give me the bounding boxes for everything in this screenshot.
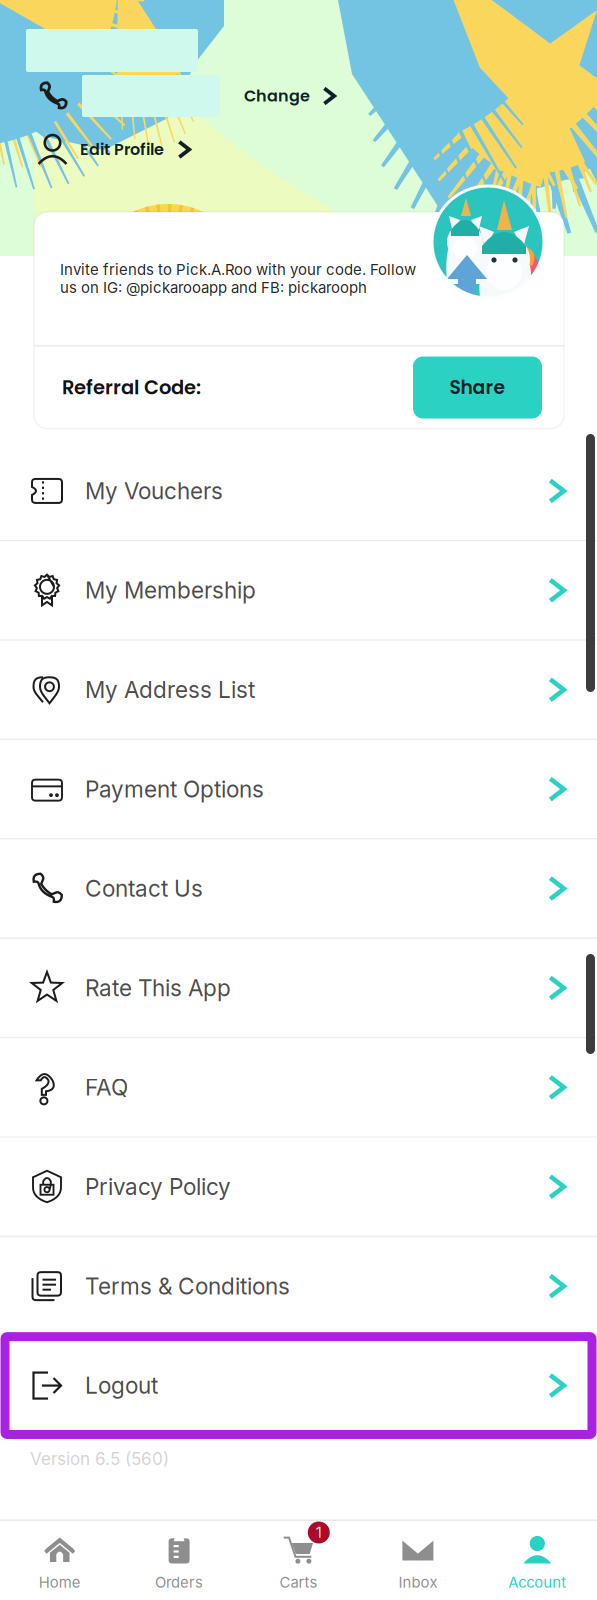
button[interactable]: Inbox bbox=[358, 1520, 478, 1600]
button[interactable]: Edit Profile bbox=[0, 128, 193, 171]
staticText: My Vouchers bbox=[85, 477, 223, 505]
staticText: 1 bbox=[316, 1524, 322, 1541]
button[interactable]: My Membership bbox=[0, 541, 597, 639]
button[interactable]: Rate This App bbox=[0, 939, 597, 1037]
staticText: Orders bbox=[155, 1573, 203, 1591]
staticText: Privacy Policy bbox=[85, 1173, 231, 1200]
button[interactable]: My Vouchers bbox=[0, 442, 597, 540]
staticText: Change bbox=[244, 85, 310, 107]
button[interactable]: My Address List bbox=[0, 641, 597, 739]
staticText: My Membership bbox=[85, 577, 256, 604]
button[interactable]: Contact Us bbox=[0, 840, 597, 937]
staticText: FAQ bbox=[85, 1074, 128, 1101]
button[interactable]: Account bbox=[478, 1520, 597, 1600]
button[interactable]: Carts bbox=[239, 1520, 358, 1600]
staticText: Carts bbox=[279, 1573, 317, 1591]
staticText: Share bbox=[449, 374, 505, 400]
button[interactable]: Terms & Conditions bbox=[0, 1237, 597, 1335]
staticText: Inbox bbox=[398, 1573, 437, 1591]
staticText: Rate This App bbox=[85, 974, 231, 1002]
staticText: Home bbox=[39, 1573, 81, 1591]
button[interactable]: Share bbox=[413, 356, 542, 418]
staticText: Payment Options bbox=[85, 775, 264, 803]
staticText: Referral Code: bbox=[62, 374, 201, 401]
staticText: Version 6.5 (560) bbox=[30, 1448, 169, 1469]
staticText: My Address List bbox=[85, 676, 255, 703]
staticText: Contact Us bbox=[85, 875, 203, 902]
button[interactable]: Privacy Policy bbox=[0, 1138, 597, 1236]
staticText: Account bbox=[508, 1573, 566, 1591]
button[interactable]: Change bbox=[220, 77, 338, 115]
staticText: Edit Profile bbox=[80, 138, 164, 161]
button[interactable]: Logout bbox=[0, 1337, 597, 1434]
button[interactable]: Orders bbox=[119, 1520, 239, 1600]
staticText: Terms & Conditions bbox=[85, 1272, 290, 1300]
button[interactable]: Home bbox=[0, 1520, 119, 1600]
button[interactable]: Payment Options bbox=[0, 740, 597, 838]
button[interactable]: FAQ bbox=[0, 1038, 597, 1136]
staticText: Invite friends to Pick.A.Roo with your c… bbox=[60, 260, 416, 296]
staticText: Logout bbox=[85, 1372, 158, 1399]
